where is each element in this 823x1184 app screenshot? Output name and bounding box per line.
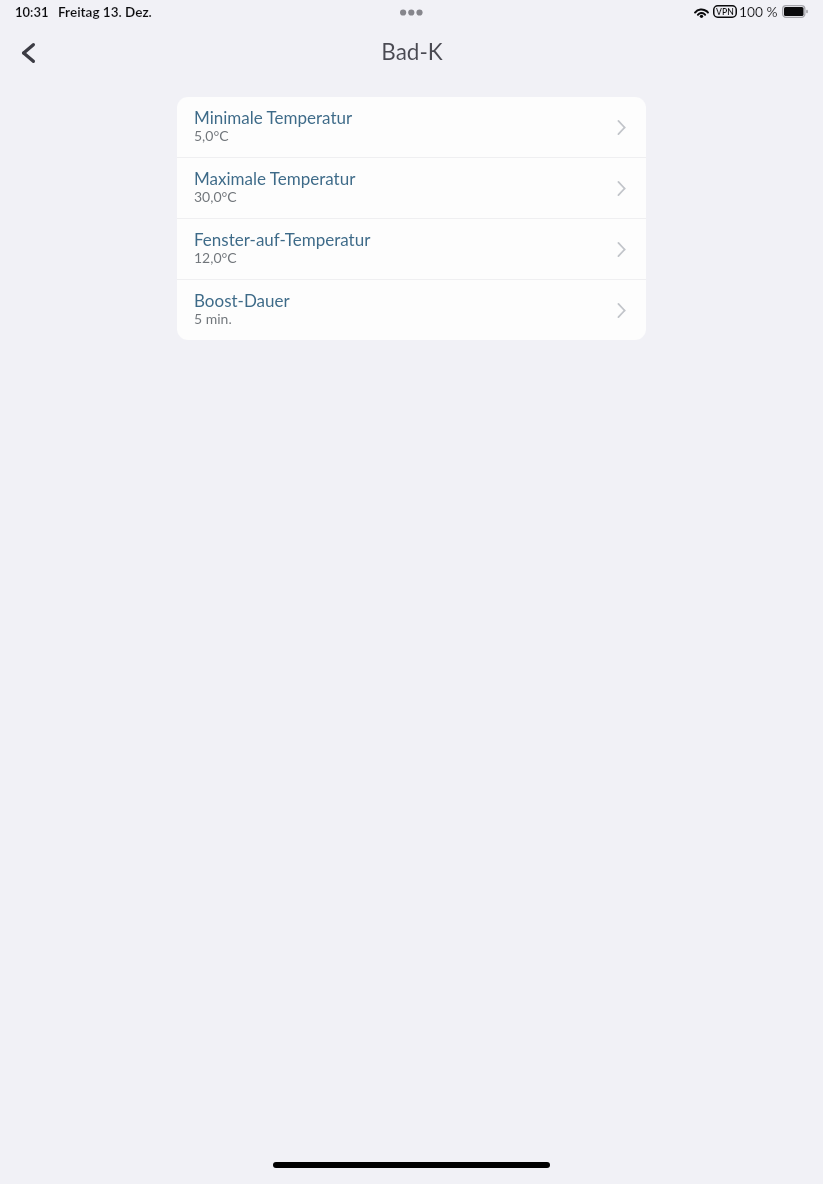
staticText: VPN <box>716 7 734 17</box>
other: Open Boost-Dauer <box>617 303 626 318</box>
staticText: Bad-K <box>381 38 443 65</box>
staticText: 5 min. <box>194 310 232 327</box>
staticText: 5,0°C <box>194 127 229 144</box>
other: Battery 100 percent <box>782 5 809 18</box>
button[interactable]: Back <box>10 35 46 71</box>
staticText: Fenster-auf-Temperatur <box>194 229 371 249</box>
button[interactable]: Maximale Temperatur <box>177 158 646 218</box>
other: Open Fenster-auf-Temperatur <box>617 242 626 257</box>
staticText: Maximale Temperatur <box>194 168 356 188</box>
staticText: Freitag 13. Dez. <box>58 4 152 20</box>
staticText: 12,0°C <box>194 249 237 266</box>
other: Wi-Fi <box>694 6 709 18</box>
other: Open Maximale Temperatur <box>617 181 626 196</box>
other: Open Minimale Temperatur <box>617 120 626 135</box>
staticText: 10:31 <box>15 4 49 20</box>
staticText: 30,0°C <box>194 188 237 205</box>
staticText: 100 % <box>739 3 778 20</box>
button[interactable]: Minimale Temperatur <box>177 97 646 157</box>
staticText: Boost-Dauer <box>194 290 290 310</box>
button[interactable]: Boost-Dauer <box>177 280 646 340</box>
button[interactable]: Fenster-auf-Temperatur <box>177 219 646 279</box>
staticText: Minimale Temperatur <box>194 107 353 127</box>
